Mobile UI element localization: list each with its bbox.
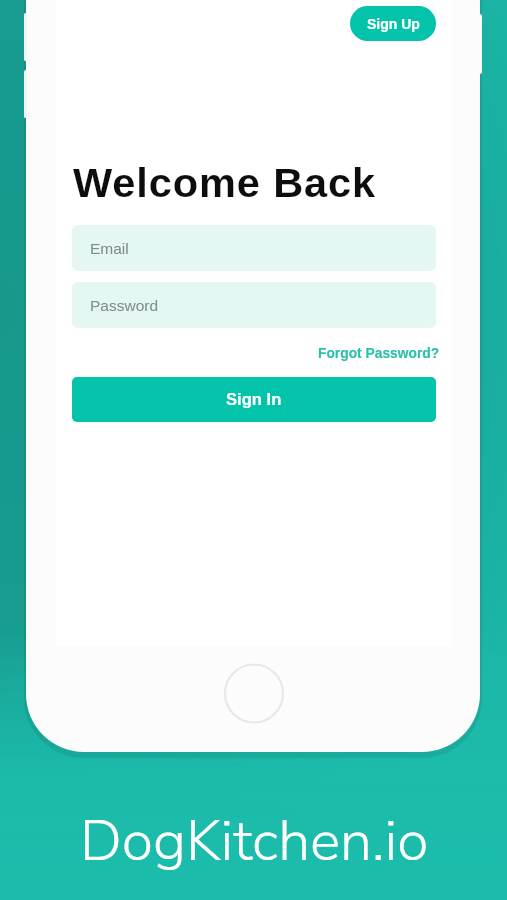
staticText: Email bbox=[90, 240, 129, 257]
staticText: Forgot Password? bbox=[318, 346, 440, 361]
button[interactable]: Sign Up bbox=[350, 6, 436, 41]
staticText: Welcome Back bbox=[73, 159, 376, 205]
button[interactable]: Forgot Password? bbox=[318, 346, 440, 361]
staticText: Password bbox=[90, 297, 159, 314]
button[interactable]: Sign In bbox=[72, 377, 436, 422]
staticText: Sign Up bbox=[367, 16, 420, 32]
staticText: DogKitchen.io bbox=[80, 802, 429, 880]
staticText: Sign In bbox=[226, 390, 282, 409]
button[interactable]: Email bbox=[72, 225, 436, 271]
button[interactable]: Password bbox=[72, 282, 436, 328]
